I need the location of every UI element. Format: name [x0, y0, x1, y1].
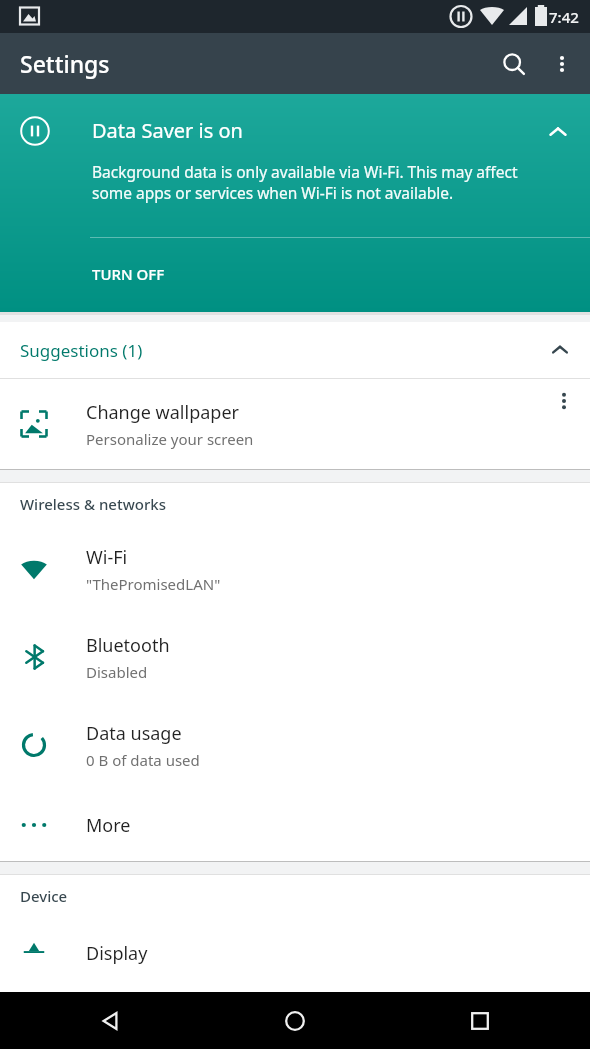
staticText: Suggestions (1) [20, 339, 143, 362]
staticText: Disabled [86, 662, 148, 682]
button[interactable]: TURN OFF [74, 251, 183, 297]
button[interactable]: Data usage [0, 701, 590, 789]
button[interactable]: Suggestion options [540, 377, 588, 425]
staticText: Change wallpaper [86, 400, 239, 425]
staticText: More [86, 813, 131, 838]
staticText: Data usage [86, 721, 182, 746]
staticText: Device [20, 886, 68, 906]
button[interactable]: More options [538, 40, 586, 88]
staticText: Wireless & networks [20, 494, 166, 514]
button[interactable]: More [0, 789, 590, 861]
button[interactable]: Display [0, 917, 590, 989]
button[interactable]: Back [86, 997, 134, 1045]
button[interactable]: Change wallpaper [0, 379, 590, 469]
staticText: TURN OFF [92, 264, 165, 284]
staticText: 0 B of data used [86, 750, 200, 770]
staticText: Settings [20, 48, 110, 79]
button[interactable]: Bluetooth [0, 613, 590, 701]
staticText: "ThePromisedLAN" [86, 574, 221, 594]
button[interactable]: Search [490, 40, 538, 88]
button[interactable]: Wi-Fi [0, 525, 590, 613]
button[interactable]: Suggestions (1) [0, 322, 590, 378]
staticText: 7:42 [549, 7, 579, 27]
staticText: Personalize your screen [86, 429, 254, 449]
staticText: Display [86, 941, 148, 966]
staticText: Bluetooth [86, 633, 170, 658]
button[interactable]: Collapse [536, 110, 580, 154]
staticText: Data Saver is on [92, 117, 243, 144]
staticText: Background data is only available via Wi… [92, 161, 546, 204]
staticText: Wi-Fi [86, 545, 128, 570]
button[interactable]: Home [271, 997, 319, 1045]
button[interactable]: Recents [456, 997, 504, 1045]
